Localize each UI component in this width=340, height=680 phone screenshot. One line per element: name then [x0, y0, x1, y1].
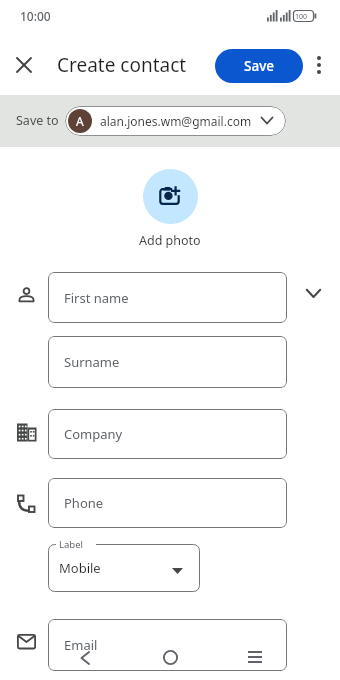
button[interactable]: A [65, 106, 286, 136]
staticText: Save to [16, 112, 59, 129]
staticText: Surname [64, 353, 120, 371]
button[interactable]: Save [215, 49, 303, 83]
staticText: Company [64, 425, 123, 443]
button[interactable] [299, 279, 327, 307]
button[interactable] [71, 644, 99, 672]
staticText: Phone [64, 494, 104, 512]
button[interactable]: Label [48, 544, 200, 592]
button[interactable]: First name [48, 272, 287, 323]
button[interactable]: Email [48, 619, 287, 671]
button[interactable] [143, 169, 198, 224]
staticText: Add photo [139, 232, 201, 249]
button[interactable] [305, 51, 333, 79]
staticText: Save [244, 57, 275, 75]
button[interactable]: Company [48, 409, 287, 459]
staticText: Create contact [57, 52, 187, 78]
staticText: Mobile [59, 559, 101, 577]
staticText: A [76, 113, 84, 129]
staticText: 10:00 [20, 8, 51, 24]
staticText: First name [64, 289, 129, 307]
staticText: Label [59, 538, 83, 551]
button[interactable]: Surname [48, 336, 287, 388]
staticText: 100 [295, 12, 308, 22]
button[interactable] [10, 51, 38, 79]
button[interactable] [156, 643, 184, 671]
staticText: Email [64, 636, 98, 654]
staticText: alan.jones.wm@gmail.com [100, 113, 252, 129]
button[interactable] [241, 643, 269, 671]
button[interactable]: Phone [48, 478, 287, 528]
